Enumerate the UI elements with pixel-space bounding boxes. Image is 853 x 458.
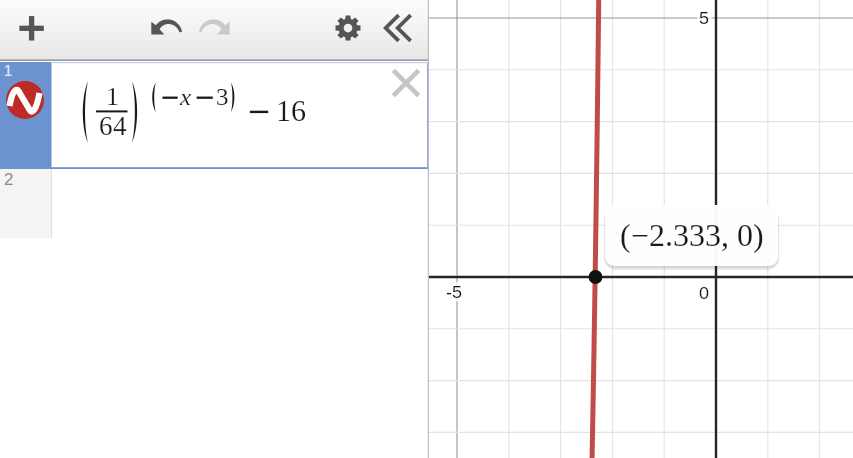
button[interactable]: Add expression [9, 1, 54, 46]
button[interactable]: Collapse panel [375, 5, 419, 49]
button[interactable] [0, 169, 429, 238]
button[interactable]: Toggle graph visibility [6, 81, 44, 119]
button[interactable]: Settings [325, 5, 371, 51]
button[interactable]: Toggle graph visibility [0, 62, 429, 169]
button[interactable]: Undo [143, 3, 189, 49]
button[interactable]: Delete expression [393, 70, 419, 96]
button[interactable]: Redo [192, 3, 238, 49]
button[interactable] [605, 205, 778, 266]
